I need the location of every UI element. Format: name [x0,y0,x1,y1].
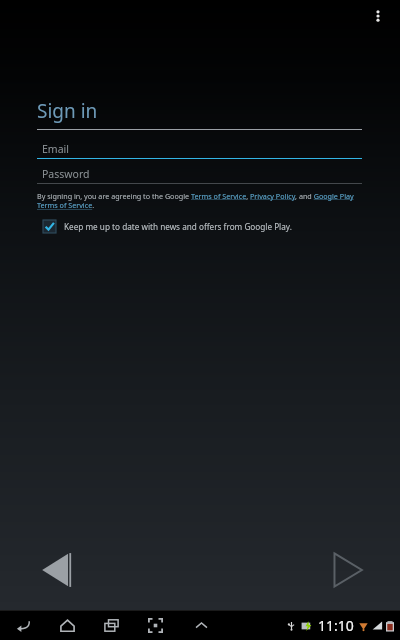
staticText: Sign in [37,98,98,124]
staticText: 11:10 [318,616,354,635]
button[interactable]: Email [37,140,362,159]
staticText: Email [42,142,69,156]
staticText: Keep me up to date with news and offers … [64,221,292,232]
button[interactable]: Back [32,544,84,596]
button[interactable]: Show navigation [188,612,214,638]
button[interactable]: Back [10,612,36,638]
button[interactable]: Home [54,612,80,638]
button[interactable]: Keep me up to date with news and offers … [43,220,362,233]
button[interactable]: Next [320,544,372,596]
button[interactable]: More options [364,2,392,30]
button[interactable]: Screenshot [142,612,168,638]
staticText: Password [42,167,90,181]
button[interactable]: Recent apps [98,612,124,638]
staticText: By signing in, you are agreeing to the G… [37,191,362,211]
button[interactable]: Password [37,165,362,184]
